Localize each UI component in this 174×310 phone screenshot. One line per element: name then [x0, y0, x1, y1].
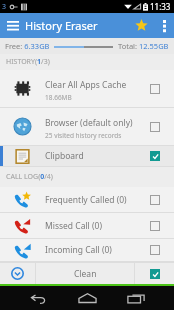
button[interactable]: More options — [154, 16, 174, 36]
button[interactable] — [135, 263, 174, 284]
staticText: Clean — [74, 268, 97, 280]
button[interactable]: Clipboard — [0, 146, 174, 166]
staticText: Browser (default only) — [45, 117, 133, 129]
staticText: 25 visited history records — [45, 131, 122, 140]
staticText: 3 — [2, 2, 7, 12]
button[interactable]: Expand — [0, 263, 35, 284]
staticText: Incoming Call (0) — [45, 244, 112, 256]
button[interactable]: Clean — [36, 263, 134, 284]
button[interactable]: Back — [29, 286, 48, 310]
button[interactable]: Clear All Apps Cache — [0, 70, 174, 107]
staticText: Clipboard — [45, 150, 84, 162]
staticText: HISTORY(1/3) — [6, 57, 50, 67]
staticText: Missed Call (0) — [45, 220, 102, 232]
staticText: CALL LOG(0/4) — [6, 172, 53, 182]
staticText: Clear All Apps Cache — [45, 79, 127, 91]
button[interactable]: Browser (default only) — [0, 108, 174, 145]
staticText: Total: 12.55GB — [118, 41, 169, 51]
staticText: History Eraser — [25, 18, 98, 33]
button[interactable]: Favorite — [129, 13, 154, 38]
button[interactable]: Home — [77, 286, 97, 310]
button[interactable]: Frequently Called (0) — [0, 187, 174, 212]
button[interactable]: Menu — [0, 13, 25, 38]
button[interactable]: Incoming Call (0) — [0, 239, 174, 261]
staticText: 18.66MB — [45, 93, 72, 102]
button[interactable]: Recents — [126, 286, 145, 310]
staticText: Frequently Called (0) — [45, 194, 127, 206]
staticText: Free: 6.33GB — [5, 41, 50, 51]
button[interactable]: Missed Call (0) — [0, 213, 174, 238]
staticText: 11:33 — [150, 1, 171, 12]
